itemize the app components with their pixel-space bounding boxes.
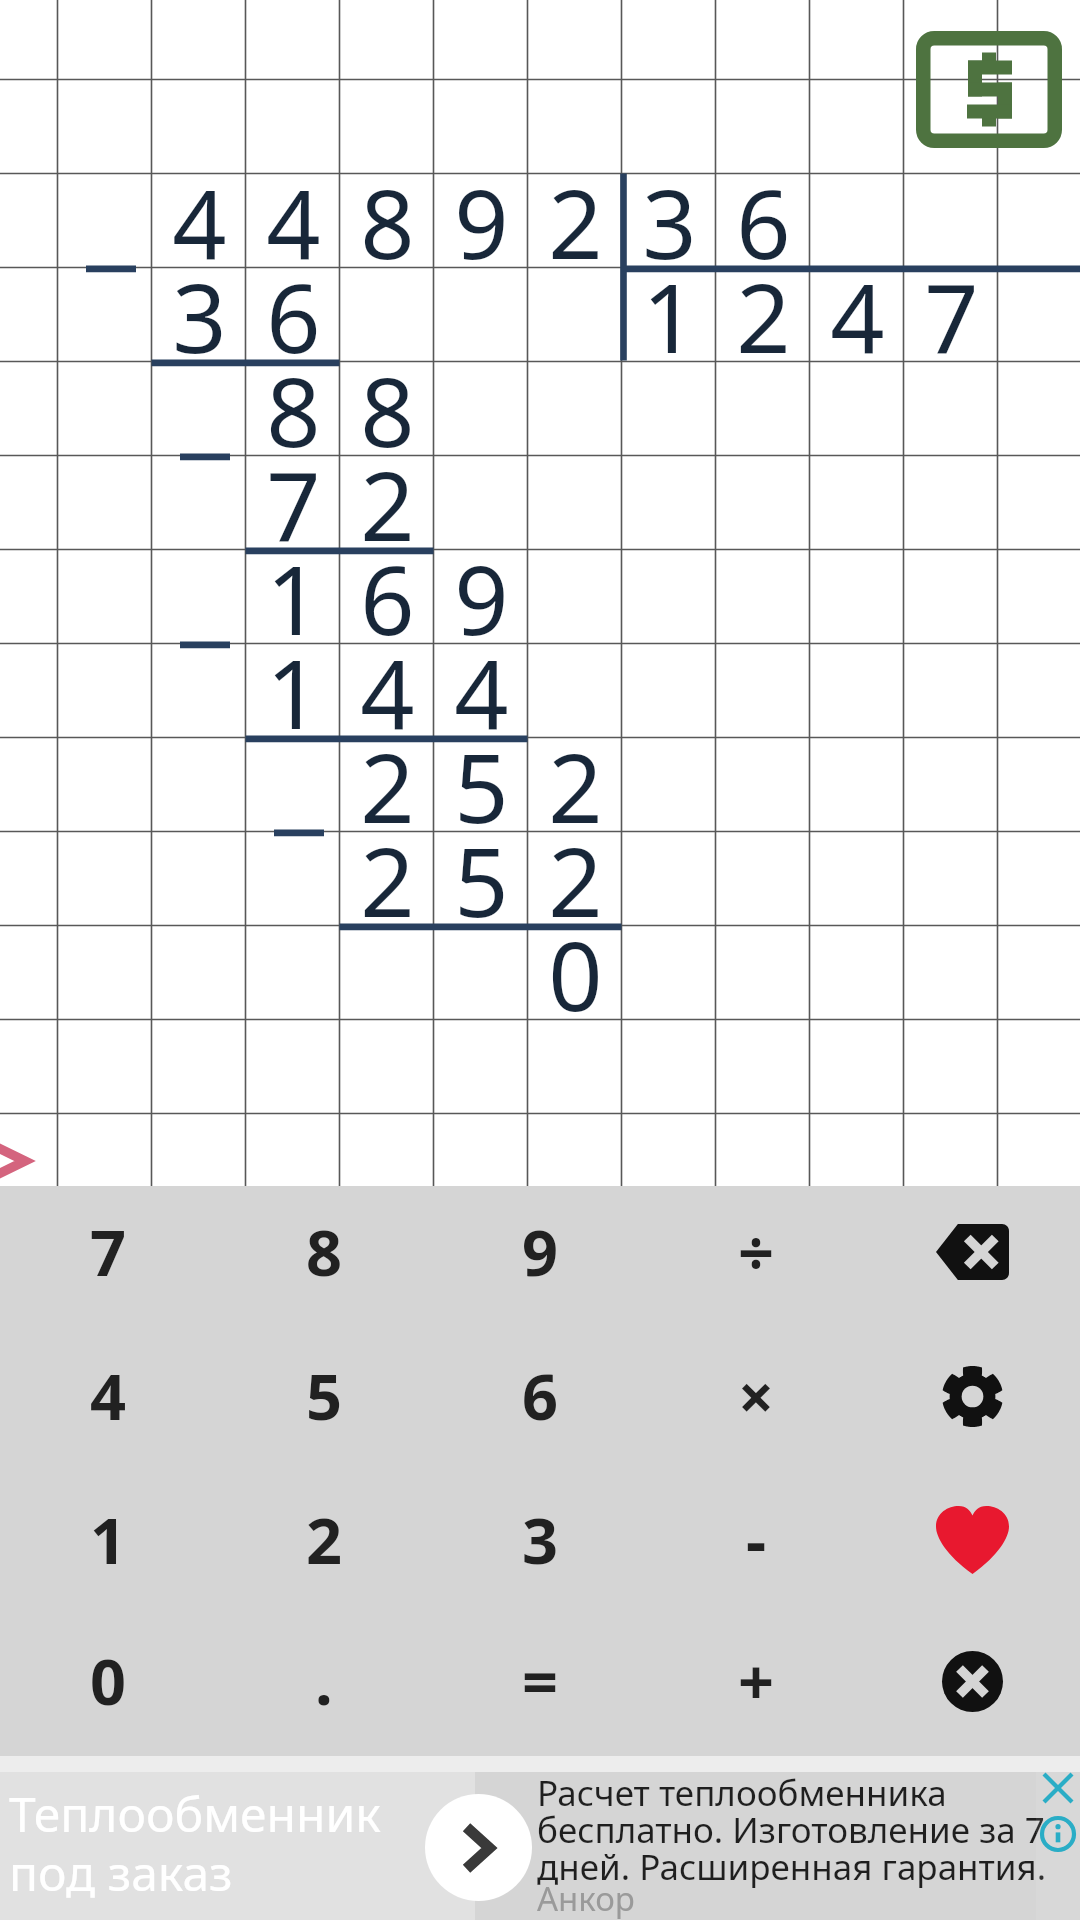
button[interactable]: .	[216, 1618, 432, 1756]
staticText: 2	[548, 157, 603, 286]
staticText: 3	[172, 251, 227, 380]
staticText: 0	[548, 909, 603, 1038]
staticText: 6	[522, 1353, 559, 1439]
staticText: 1	[266, 533, 321, 662]
staticText: 7	[90, 1209, 127, 1295]
button[interactable]: 3	[432, 1474, 648, 1618]
button[interactable]: 8	[216, 1186, 432, 1330]
staticText: 9	[454, 533, 509, 662]
button[interactable]: ×	[648, 1330, 864, 1474]
button[interactable]: Favorite	[864, 1474, 1080, 1618]
button[interactable]: ÷	[648, 1186, 864, 1330]
staticText: 2	[360, 721, 415, 850]
staticText: 8	[360, 157, 415, 286]
button[interactable]: 1	[0, 1474, 216, 1618]
button[interactable]: 9	[432, 1186, 648, 1330]
staticText: 5	[306, 1353, 343, 1439]
staticText: 6	[266, 251, 321, 380]
staticText: 1	[642, 251, 697, 380]
staticText: =	[522, 1638, 559, 1724]
staticText: 4	[172, 157, 227, 286]
staticText: 9	[522, 1209, 559, 1295]
button[interactable]: 4	[0, 1330, 216, 1474]
staticText: 1	[266, 627, 321, 756]
staticText: 4	[360, 627, 415, 756]
staticText: 1	[90, 1497, 127, 1583]
button[interactable]: 2	[216, 1474, 432, 1618]
button[interactable]: Теплообменник под заказ	[0, 1772, 1080, 1920]
staticText: 6	[360, 533, 415, 662]
staticText: ×	[738, 1353, 775, 1439]
staticText: Расчет теплообменника бесплатно. Изготов…	[537, 1769, 1047, 1890]
button[interactable]: Settings	[864, 1330, 1080, 1474]
staticText: 5	[454, 815, 509, 944]
staticText: 8	[266, 345, 321, 474]
staticText: 2	[360, 815, 415, 944]
button[interactable]: 5	[216, 1330, 432, 1474]
staticText: -	[746, 1497, 767, 1583]
button[interactable]: Close ad	[1036, 1766, 1080, 1810]
button[interactable]: 7	[0, 1186, 216, 1330]
staticText: 5	[454, 721, 509, 850]
staticText: 2	[548, 721, 603, 850]
staticText: 4	[266, 157, 321, 286]
staticText: 0	[90, 1638, 127, 1724]
button[interactable]: 6	[432, 1330, 648, 1474]
staticText: 4	[830, 251, 885, 380]
button[interactable]: Worksheet 44892 ÷ 36 = 1247	[0, 0, 1080, 1186]
staticText: 2	[548, 815, 603, 944]
staticText: 3	[522, 1497, 559, 1583]
staticText: 4	[90, 1353, 127, 1439]
staticText: 4	[454, 627, 509, 756]
staticText: 3	[642, 157, 697, 286]
button[interactable]: =	[432, 1618, 648, 1756]
button[interactable]: Open advertisement	[425, 1794, 532, 1901]
staticText: .	[315, 1638, 333, 1724]
button[interactable]: 0	[0, 1618, 216, 1756]
staticText: +	[738, 1638, 775, 1724]
staticText: 2	[360, 439, 415, 568]
staticText: 2	[306, 1497, 343, 1583]
staticText: 8	[306, 1209, 343, 1295]
button[interactable]: Backspace	[864, 1186, 1080, 1330]
staticText: Теплообменник под заказ	[9, 1781, 381, 1905]
button[interactable]: Ad info	[1036, 1812, 1080, 1856]
staticText: 6	[736, 157, 791, 286]
button[interactable]: Remove ads	[916, 31, 1062, 148]
staticText: ÷	[738, 1209, 775, 1295]
button[interactable]: +	[648, 1618, 864, 1756]
staticText: 7	[924, 251, 979, 380]
staticText: 9	[454, 157, 509, 286]
staticText: 8	[360, 345, 415, 474]
staticText: 7	[266, 439, 321, 568]
staticText: 2	[736, 251, 791, 380]
button[interactable]: Clear	[864, 1618, 1080, 1756]
button[interactable]: -	[648, 1474, 864, 1618]
staticText: Анкор	[537, 1876, 635, 1920]
